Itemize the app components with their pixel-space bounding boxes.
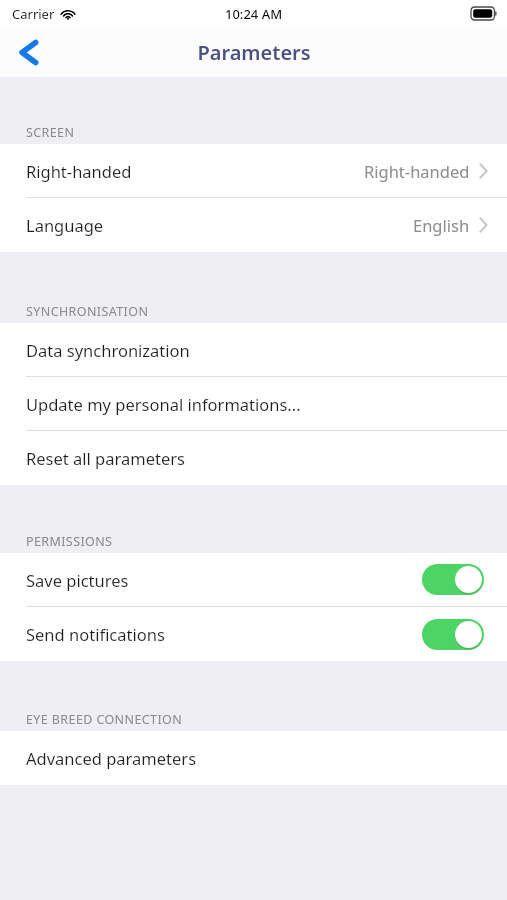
staticText: English [413, 214, 470, 236]
staticText: 10:24 AM [225, 5, 283, 23]
staticText: SCREEN [26, 124, 75, 141]
button[interactable]: Save pictures toggle, on [422, 564, 484, 595]
button[interactable]: Update my personal informations... [0, 377, 507, 431]
staticText: Carrier [12, 5, 55, 23]
staticText: EYE BREED CONNECTION [26, 711, 183, 728]
staticText: Send notifications [26, 623, 165, 645]
staticText: SYNCHRONISATION [26, 303, 149, 320]
staticText: Right-handed [364, 160, 470, 182]
staticText: Language [26, 214, 104, 236]
button[interactable]: Right-handed [0, 144, 507, 198]
button[interactable]: Advanced parameters [0, 731, 507, 785]
staticText: Parameters [197, 39, 311, 66]
staticText: Right-handed [26, 160, 132, 182]
button[interactable]: Reset all parameters [0, 431, 507, 485]
staticText: Advanced parameters [26, 747, 197, 769]
button[interactable]: Language [0, 198, 507, 252]
staticText: Save pictures [26, 569, 129, 591]
button[interactable]: Send notifications toggle, on [422, 619, 484, 650]
staticText: Data synchronization [26, 339, 190, 361]
staticText: Reset all parameters [26, 447, 185, 469]
staticText: PERMISSIONS [26, 533, 113, 550]
button[interactable]: Data synchronization [0, 323, 507, 377]
staticText: Update my personal informations... [26, 393, 301, 415]
button[interactable]: Back [0, 27, 56, 77]
